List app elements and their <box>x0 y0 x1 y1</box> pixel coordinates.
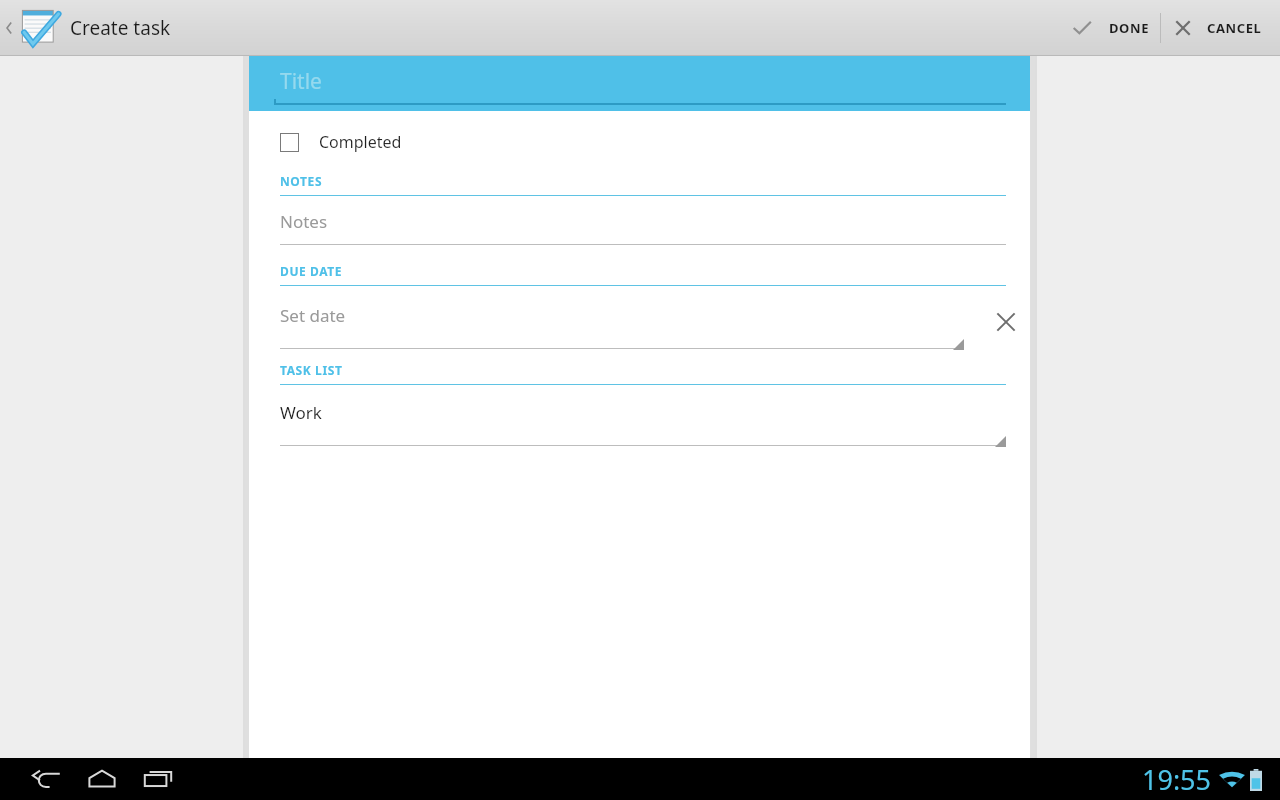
staticText: Completed <box>319 131 402 153</box>
button[interactable]: Set date <box>249 304 982 349</box>
button[interactable]: Status: 19:55, wifi, battery <box>1142 761 1262 798</box>
staticText: NOTES <box>280 173 323 189</box>
button[interactable]: Work <box>249 401 1030 446</box>
staticText: DUE DATE <box>280 263 343 279</box>
staticText: Work <box>280 401 322 424</box>
staticText: TASK LIST <box>280 362 343 378</box>
staticText: Notes <box>280 210 328 233</box>
staticText: 19:55 <box>1142 761 1212 798</box>
button[interactable]: DONE <box>1059 3 1160 53</box>
staticText: CANCEL <box>1207 19 1262 37</box>
staticText: DONE <box>1109 19 1150 37</box>
button[interactable]: CANCEL <box>1161 4 1280 52</box>
button[interactable]: Recent apps <box>130 758 186 800</box>
button[interactable]: Home <box>74 758 130 800</box>
button[interactable]: Back <box>18 758 74 800</box>
button[interactable]: Notes <box>249 210 1030 245</box>
staticText: Title <box>280 67 322 96</box>
button[interactable]: Completed <box>249 125 1030 159</box>
button[interactable]: Title <box>249 56 1030 111</box>
button[interactable]: Clear due date <box>982 298 1030 346</box>
staticText: Create task <box>70 15 171 41</box>
button[interactable]: Create task <box>0 6 171 50</box>
staticText: Set date <box>280 304 346 327</box>
